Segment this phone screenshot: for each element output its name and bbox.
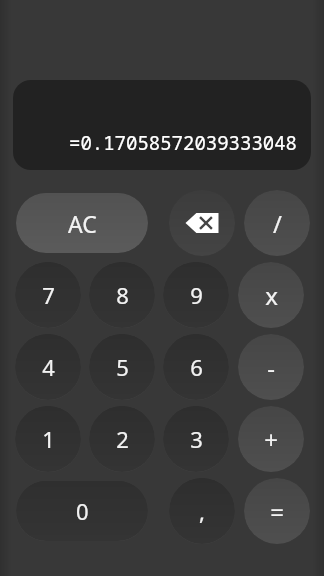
button[interactable]: / [244,190,310,256]
staticText: 3 [190,424,203,454]
button[interactable]: 5 [89,334,155,400]
staticText: , [199,496,205,526]
button[interactable]: 8 [89,262,155,328]
button[interactable]: 2 [89,406,155,472]
button[interactable]: 4 [15,334,81,400]
staticText: 4 [42,352,55,382]
button[interactable]: 3 [163,406,229,472]
staticText: 5 [116,352,129,382]
staticText: AC [68,208,97,239]
staticText: x [265,279,278,312]
button[interactable]: Backspace [169,190,235,256]
button[interactable]: 7 [15,262,81,328]
button[interactable]: 1 [15,406,81,472]
staticText: 6 [190,352,203,382]
button[interactable]: - [238,334,304,400]
staticText: = [270,495,284,528]
staticText: 2 [116,424,129,454]
staticText: / [273,207,282,240]
staticText: + [264,423,278,456]
button[interactable]: 6 [163,334,229,400]
staticText: =0.17058572039333048 [68,130,297,156]
staticText: 7 [42,280,55,310]
button[interactable]: 0 [16,481,148,541]
staticText: 1 [42,424,55,454]
button[interactable]: =0.17058572039333048 [13,80,311,170]
staticText: 0 [76,496,89,526]
button[interactable]: x [238,262,304,328]
button[interactable]: , [169,478,235,544]
staticText: - [267,351,275,384]
button[interactable]: AC [16,193,148,253]
staticText: 8 [116,280,129,310]
button[interactable]: = [244,478,310,544]
staticText: 9 [190,280,203,310]
button[interactable]: + [238,406,304,472]
button[interactable]: 9 [163,262,229,328]
